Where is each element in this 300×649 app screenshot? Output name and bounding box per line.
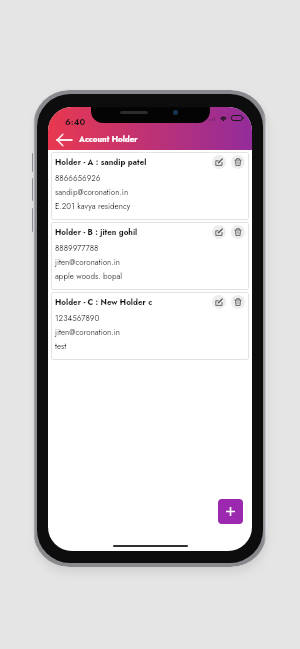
staticText: Holder - B : jiten gohil [55, 226, 138, 238]
button[interactable]: Holder - A : sandip patel [51, 152, 249, 220]
button[interactable]: Delete holder [231, 225, 245, 239]
staticText: jiten@coronation.in [55, 256, 120, 268]
staticText: 6:40 [65, 115, 86, 128]
button[interactable]: Edit holder [212, 155, 226, 169]
button[interactable]: Add account holder [218, 499, 243, 524]
staticText: Holder - C : New Holder c [55, 296, 153, 308]
button[interactable]: Delete holder [231, 155, 245, 169]
staticText: 8889977788 [55, 242, 99, 254]
staticText: jiten@coronation.in [55, 326, 120, 338]
button[interactable]: Edit holder [212, 295, 226, 309]
staticText: 8866656926 [55, 172, 101, 184]
staticText: apple woods. bopal [55, 270, 123, 282]
button[interactable]: Holder - B : jiten gohil [51, 222, 249, 290]
staticText: sandip@coronation.in [55, 186, 129, 198]
staticText: Account Holder [79, 133, 138, 145]
button[interactable]: Holder - C : New Holder c [51, 292, 249, 360]
staticText: E.201 kavya residency [55, 200, 131, 212]
button[interactable]: Edit holder [212, 225, 226, 239]
staticText: test [55, 340, 67, 352]
button[interactable]: Back [53, 132, 75, 148]
button[interactable]: Delete holder [231, 295, 245, 309]
staticText: 1234567890 [55, 312, 100, 324]
staticText: Holder - A : sandip patel [55, 156, 147, 168]
